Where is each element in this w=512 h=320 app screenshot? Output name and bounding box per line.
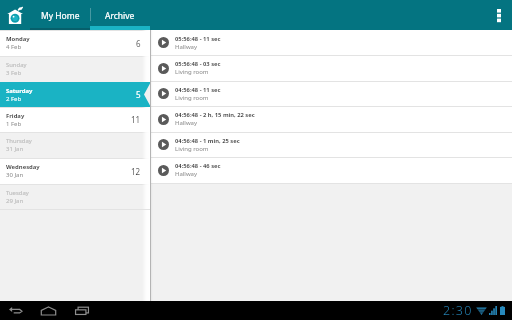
staticText: 11 [131, 114, 141, 125]
staticText: 31 Jan [6, 145, 24, 153]
staticText: Monday [6, 35, 30, 43]
button[interactable]: Thursday [0, 132, 150, 158]
button[interactable]: 04:56:48 - 46 sec [150, 157, 512, 183]
button[interactable]: My Home [30, 0, 90, 30]
staticText: 04:56:48 - 11 sec [175, 86, 221, 94]
staticText: Friday [6, 112, 25, 120]
staticText: 1 Feb [6, 120, 22, 128]
staticText: 04:56:48 - 46 sec [175, 162, 221, 170]
staticText: Thursday [6, 137, 32, 145]
button[interactable]: Sunday [0, 56, 150, 82]
staticText: Saturday [6, 87, 33, 95]
staticText: Living room [175, 68, 209, 76]
staticText: Living room [175, 94, 209, 102]
staticText: 4 Feb [6, 43, 22, 51]
staticText: Wednesday [6, 163, 40, 171]
button[interactable]: Saturday [0, 82, 150, 107]
staticText: Sunday [6, 61, 27, 69]
button[interactable]: Monday [0, 30, 150, 56]
button[interactable]: Recent apps [70, 301, 93, 320]
button[interactable]: Friday [0, 107, 150, 132]
button[interactable]: 04:56:48 - 2 h, 15 min, 22 sec [150, 106, 512, 132]
button[interactable]: 04:56:48 - 11 sec [150, 81, 512, 106]
staticText: My Home [41, 10, 80, 22]
button[interactable]: 04:56:48 - 1 min, 25 sec [150, 132, 512, 157]
staticText: 05:56:48 - 11 sec [175, 35, 221, 43]
staticText: Hallway [175, 119, 198, 127]
staticText: Living room [175, 145, 209, 153]
staticText: 2:30 [443, 302, 473, 319]
staticText: 30 Jan [6, 171, 24, 179]
staticText: 04:56:48 - 1 min, 25 sec [175, 137, 240, 145]
button[interactable]: Back [4, 301, 27, 320]
staticText: 29 Jan [6, 197, 24, 205]
button[interactable]: Archive [90, 0, 150, 30]
staticText: Hallway [175, 170, 198, 178]
staticText: 6 [136, 38, 141, 49]
staticText: 2 Feb [6, 95, 22, 103]
staticText: Archive [105, 10, 135, 22]
button[interactable]: 05:56:48 - 03 sec [150, 55, 512, 81]
staticText: 04:56:48 - 2 h, 15 min, 22 sec [175, 111, 255, 119]
button[interactable]: Home camera [0, 0, 30, 30]
staticText: Tuesday [6, 189, 29, 197]
staticText: 12 [131, 166, 141, 177]
button[interactable]: Tuesday [0, 184, 150, 209]
button[interactable]: Home [37, 301, 60, 320]
button[interactable]: More options [485, 0, 512, 30]
staticText: 3 Feb [6, 69, 22, 77]
button[interactable]: 05:56:48 - 11 sec [150, 30, 512, 55]
button[interactable]: Wednesday [0, 158, 150, 184]
staticText: 5 [136, 89, 141, 100]
staticText: Hallway [175, 43, 198, 51]
staticText: 05:56:48 - 03 sec [175, 60, 221, 68]
